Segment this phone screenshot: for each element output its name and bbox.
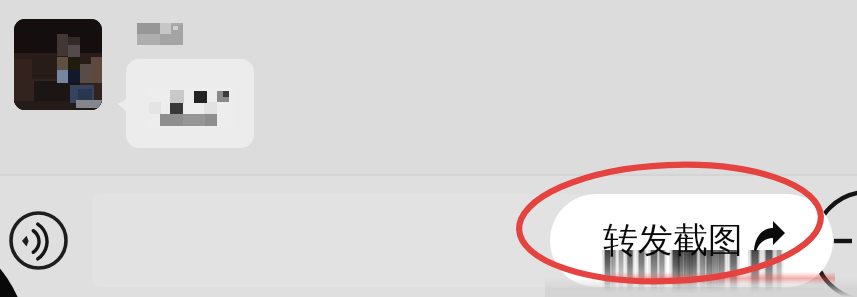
staticText: 转发截图 [603,218,743,262]
button[interactable]: Contact avatar [14,19,102,110]
button[interactable] [126,59,254,148]
button[interactable]: 转发截图 [550,194,833,287]
button[interactable]: More options [812,190,857,297]
button[interactable] [92,194,793,287]
button[interactable]: Voice input [9,211,68,270]
